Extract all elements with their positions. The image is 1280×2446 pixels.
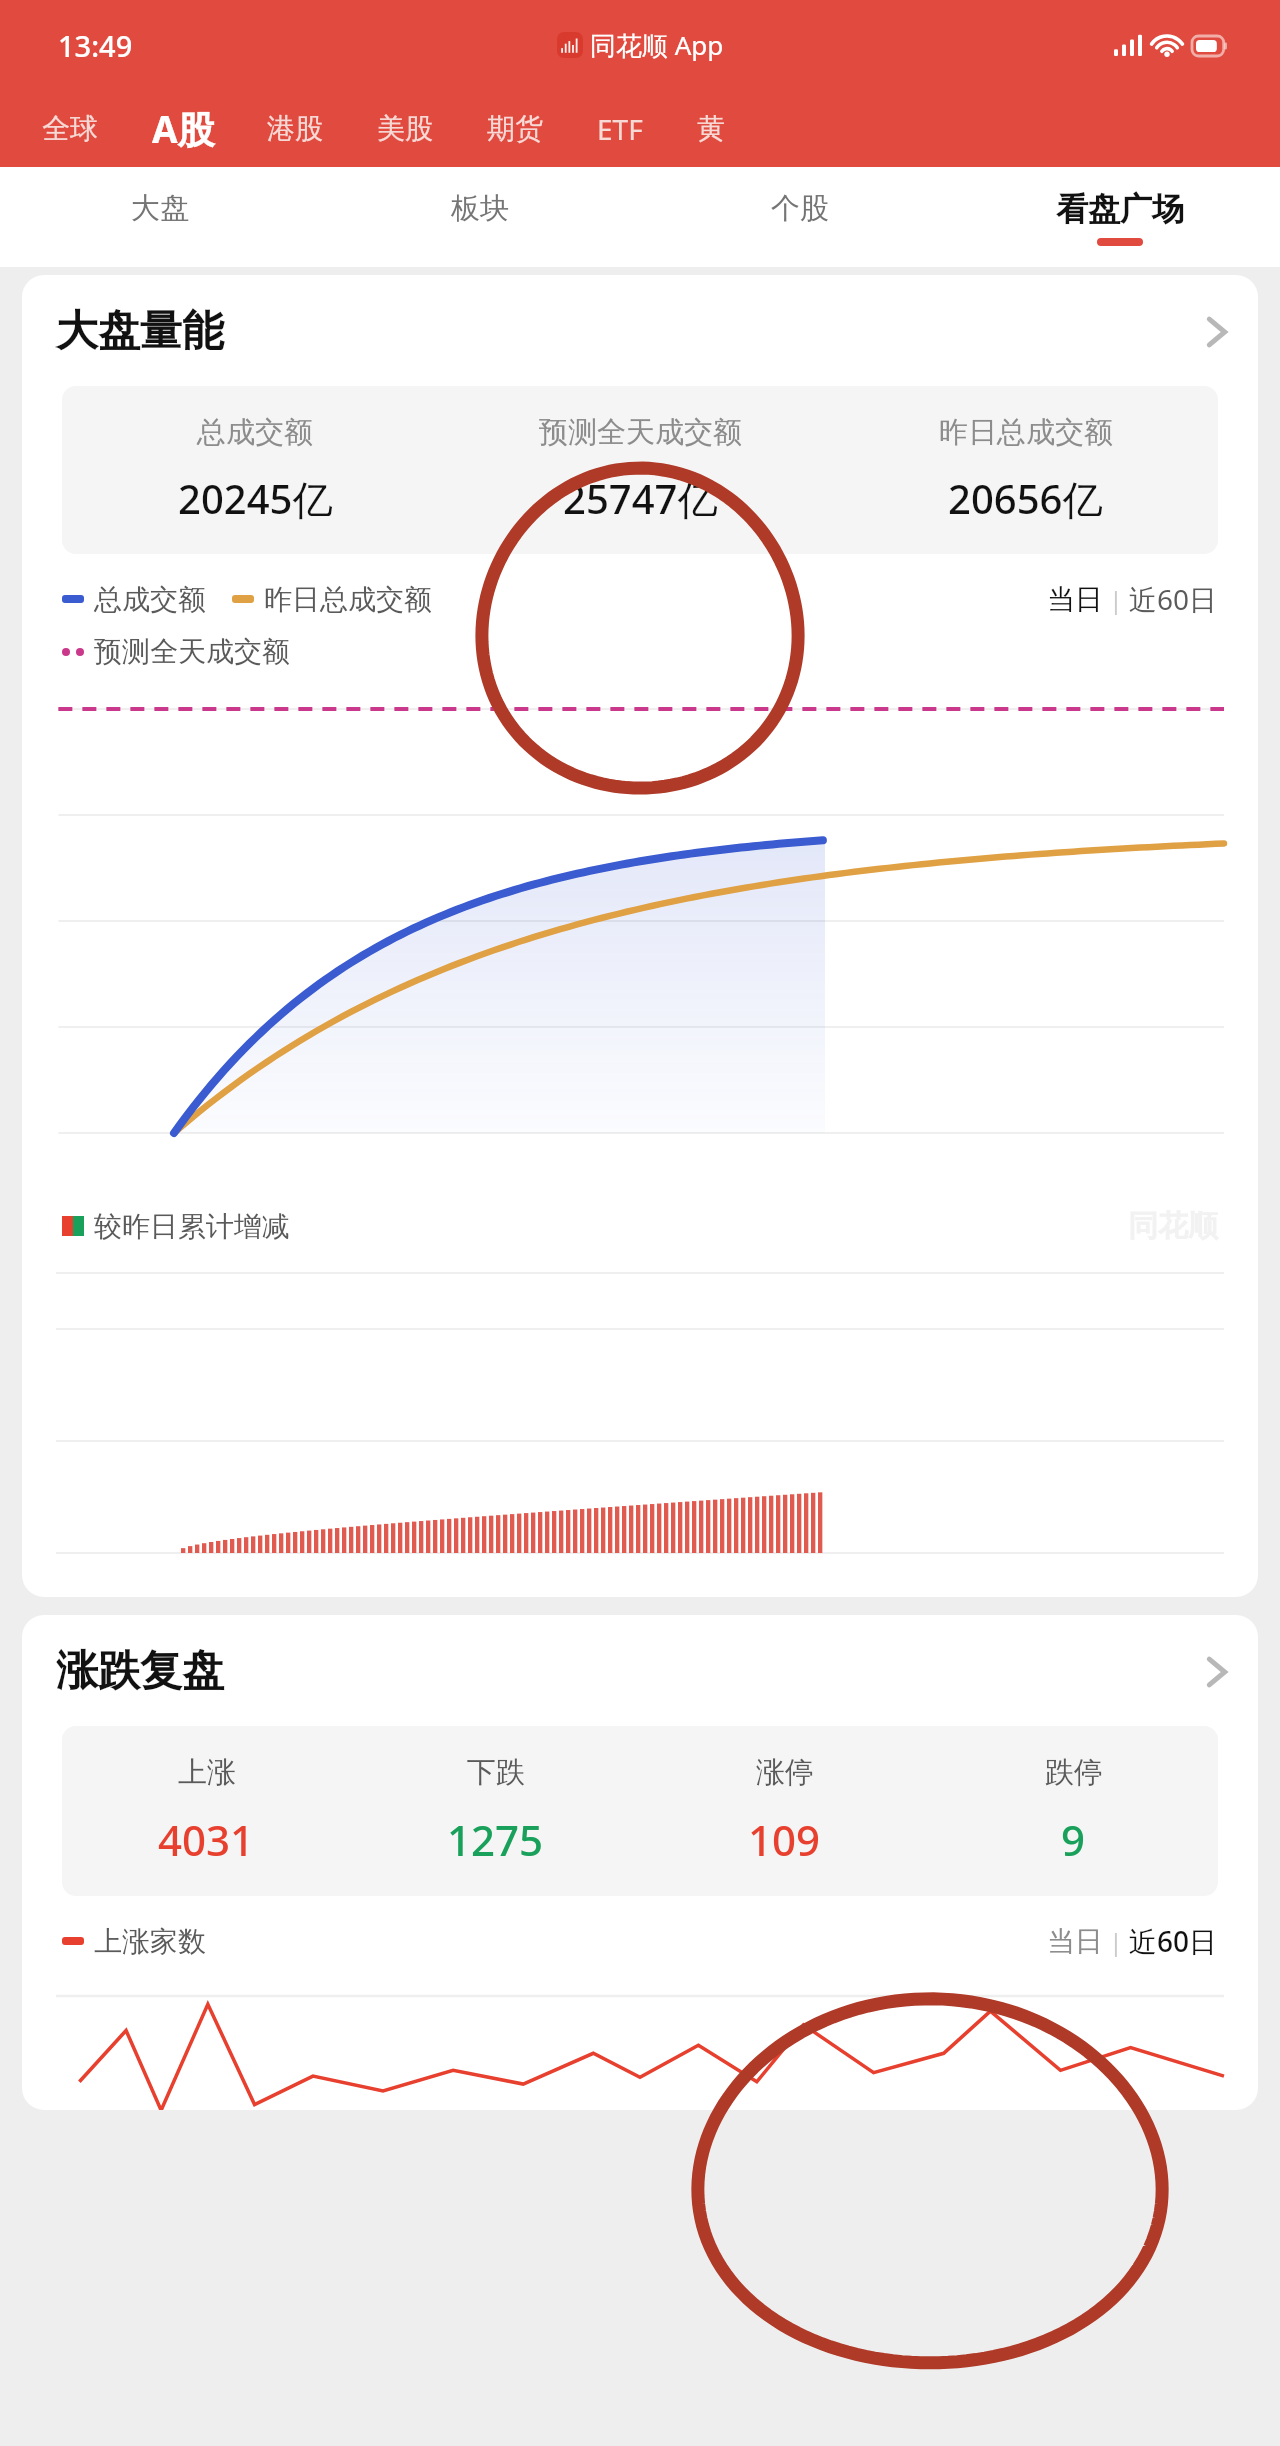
button[interactable]: More — [1206, 312, 1228, 352]
staticText: 昨日总成交额 — [939, 414, 1113, 451]
button[interactable]: 涨跌复盘 — [22, 1615, 1258, 2110]
staticText: 看盘广场 — [1056, 189, 1184, 229]
staticText: | — [1103, 583, 1129, 616]
staticText: 同花顺 App — [590, 27, 724, 63]
staticText: 近60日 — [1129, 580, 1218, 618]
button[interactable]: 港股 — [265, 105, 325, 152]
button[interactable]: 看盘广场 — [960, 167, 1280, 267]
staticText: 上涨 — [178, 1754, 236, 1791]
button[interactable]: 全球 — [40, 105, 100, 152]
button[interactable]: 期货 — [485, 105, 545, 152]
button[interactable]: 近60日 — [1129, 580, 1218, 618]
staticText: 上涨家数 — [94, 1924, 206, 1959]
staticText: 大盘量能 — [56, 305, 224, 358]
staticText: 13:49 — [58, 26, 133, 65]
staticText: 全球 — [42, 111, 98, 146]
button[interactable]: 当日 — [1047, 1924, 1103, 1959]
staticText: 期货 — [487, 111, 543, 146]
button[interactable]: 大盘量能 — [22, 275, 1258, 1597]
button[interactable]: 当日 — [1047, 582, 1103, 617]
button[interactable]: ETF — [595, 104, 645, 154]
staticText: 同花顺 — [1128, 1207, 1218, 1245]
button[interactable]: 大盘 — [0, 167, 320, 267]
staticText: 20245亿 — [178, 471, 333, 526]
staticText: 涨跌复盘 — [56, 1645, 224, 1698]
staticText: 109 — [748, 1811, 821, 1868]
staticText: 预测全天成交额 — [94, 634, 290, 669]
staticText: 板块 — [451, 190, 509, 227]
button[interactable]: 黄 — [695, 105, 727, 152]
staticText: 个股 — [771, 190, 829, 227]
staticText: 涨停 — [756, 1754, 814, 1791]
staticText: 港股 — [267, 111, 323, 146]
staticText: 昨日总成交额 — [264, 582, 432, 617]
button[interactable]: A股 — [150, 97, 217, 160]
staticText: 4031 — [158, 1811, 255, 1868]
staticText: 9 — [1061, 1811, 1086, 1868]
staticText: 总成交额 — [197, 414, 313, 451]
staticText: 近60日 — [1129, 1922, 1218, 1960]
staticText: 25747亿 — [563, 471, 718, 526]
button[interactable]: 板块 — [320, 167, 640, 267]
button[interactable]: More — [1206, 1652, 1228, 1692]
staticText: 1275 — [447, 1811, 544, 1868]
staticText: 黄 — [697, 111, 725, 146]
staticText: A股 — [152, 103, 215, 154]
staticText: 当日 — [1047, 1924, 1103, 1959]
button[interactable]: 美股 — [375, 105, 435, 152]
staticText: | — [1103, 1925, 1129, 1958]
staticText: 跌停 — [1045, 1754, 1103, 1791]
staticText: 下跌 — [467, 1754, 525, 1791]
button[interactable]: 近60日 — [1129, 1922, 1218, 1960]
staticText: 预测全天成交额 — [539, 414, 742, 451]
staticText: 当日 — [1047, 582, 1103, 617]
staticText: ETF — [597, 110, 643, 148]
staticText: 大盘 — [131, 190, 189, 227]
staticText: 20656亿 — [948, 471, 1103, 526]
button[interactable]: 个股 — [640, 167, 960, 267]
staticText: 美股 — [377, 111, 433, 146]
staticText: 较昨日累计增减 — [94, 1209, 290, 1244]
staticText: 总成交额 — [94, 582, 206, 617]
